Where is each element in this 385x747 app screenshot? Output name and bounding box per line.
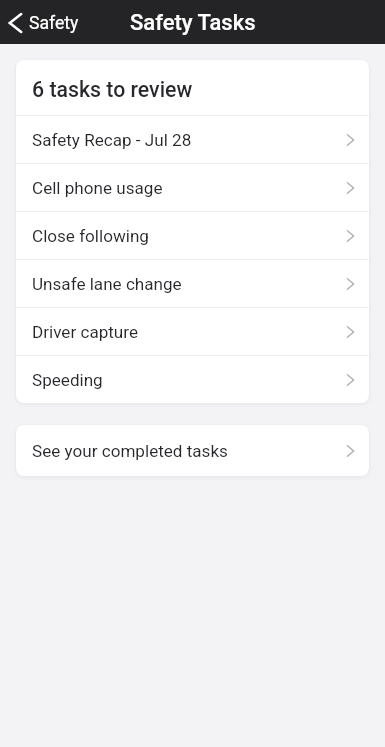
button[interactable]: Driver capture [16, 308, 369, 355]
button[interactable]: Unsafe lane change [16, 260, 369, 307]
button[interactable]: Speeding [16, 356, 369, 403]
button[interactable]: Safety Recap - Jul 28 [16, 116, 369, 163]
staticText: Close following [32, 226, 149, 246]
staticText: See your completed tasks [32, 441, 228, 461]
staticText: Unsafe lane change [32, 274, 182, 294]
staticText: Speeding [32, 370, 103, 390]
staticText: Driver capture [32, 322, 138, 342]
staticText: Cell phone usage [32, 178, 163, 198]
button[interactable]: Close following [16, 212, 369, 259]
button[interactable]: Back to Safety [0, 0, 91, 44]
staticText: 6 tasks to review [32, 77, 193, 102]
button[interactable]: See your completed tasks [16, 425, 369, 476]
staticText: Safety [29, 13, 79, 34]
staticText: Safety Tasks [130, 10, 256, 36]
staticText: Safety Recap - Jul 28 [32, 130, 192, 150]
button[interactable]: Cell phone usage [16, 164, 369, 211]
